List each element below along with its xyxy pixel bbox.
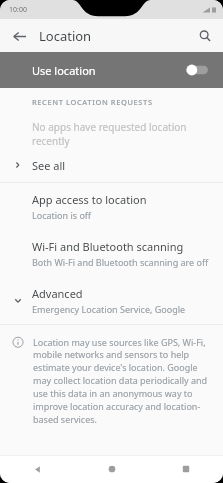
staticText: See all [32, 158, 66, 173]
staticText: Use location [32, 63, 96, 78]
button[interactable]: Back [7, 24, 31, 48]
button[interactable]: Back [0, 455, 75, 483]
staticText: Location may use sources like GPS, Wi-Fi… [33, 336, 210, 426]
staticText: Both Wi-Fi and Bluetooth scanning are of… [32, 256, 209, 268]
button[interactable]: Search [193, 24, 217, 48]
button[interactable]: Advanced [0, 277, 223, 324]
staticText: 10:00 [9, 5, 27, 15]
staticText: RECENT LOCATION REQUESTS [32, 97, 153, 107]
staticText: Advanced [32, 286, 83, 301]
button[interactable]: Wi-Fi and Bluetooth scanning [0, 230, 223, 277]
button[interactable]: See all [0, 148, 223, 182]
button[interactable]: App access to location [0, 183, 223, 230]
staticText: Location [39, 27, 92, 45]
button[interactable]: Home [75, 455, 149, 483]
staticText: No apps have requested location recently [32, 120, 223, 148]
button[interactable]: Use location [0, 52, 223, 88]
staticText: Emergency Location Service, Google Locat… [32, 303, 217, 315]
button[interactable]: Recent apps [149, 455, 223, 483]
staticText: Location is off [32, 209, 92, 221]
staticText: Wi-Fi and Bluetooth scanning [32, 239, 184, 254]
staticText: App access to location [32, 192, 147, 207]
